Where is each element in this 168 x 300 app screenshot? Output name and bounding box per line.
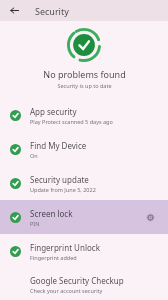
staticText: Fingerprint added: [30, 254, 77, 261]
staticText: Play Protect scanned 5 days ago: [30, 118, 113, 125]
staticText: Update from June 5, 2022: [30, 186, 96, 193]
button[interactable]: Google Security Checkup: [0, 268, 168, 300]
staticText: Security is up to date: [57, 82, 112, 89]
staticText: Check your account security: [30, 287, 103, 294]
staticText: Security update: [30, 174, 89, 185]
staticText: App security: [30, 106, 77, 117]
button[interactable]: Back: [6, 2, 23, 19]
staticText: Fingerprint Unlock: [30, 242, 100, 253]
staticText: Security: [35, 5, 69, 17]
staticText: Screen lock: [30, 208, 73, 219]
button[interactable]: Find My Device: [0, 132, 168, 166]
staticText: PIN: [30, 220, 40, 227]
staticText: Google Security Checkup: [30, 275, 124, 286]
staticText: On: [30, 152, 38, 159]
button[interactable]: Security update: [0, 166, 168, 200]
button[interactable]: App security: [0, 98, 168, 132]
staticText: No problems found: [43, 68, 126, 80]
staticText: Find My Device: [30, 140, 87, 151]
button[interactable]: Screen lock: [0, 200, 168, 234]
button[interactable]: Fingerprint Unlock: [0, 234, 168, 268]
button[interactable]: Screen lock settings: [142, 209, 158, 225]
